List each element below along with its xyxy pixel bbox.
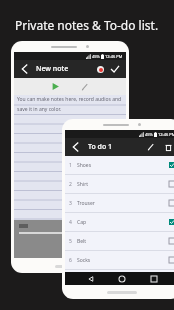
staticText: Private notes & To-do list. — [15, 17, 159, 33]
staticText: 12:46 PM — [158, 132, 174, 137]
button[interactable]: Back — [85, 273, 97, 285]
button[interactable]: 2 — [65, 175, 174, 194]
button[interactable]: Back — [70, 141, 82, 153]
staticText: 1 — [69, 162, 72, 169]
button[interactable]: Edit — [145, 141, 157, 153]
staticText: New note — [36, 64, 69, 74]
button[interactable]: 6 — [65, 251, 174, 270]
staticText: You can make notes here, record audios a… — [17, 96, 122, 103]
button[interactable]: 3 — [65, 194, 174, 213]
button[interactable]: Record audio — [49, 80, 62, 93]
staticText: 5 — [69, 238, 72, 245]
button[interactable]: Back — [19, 63, 31, 75]
staticText: Socks — [77, 257, 91, 264]
button[interactable]: Save — [109, 63, 121, 75]
button[interactable]: 4 — [65, 213, 174, 232]
button[interactable]: 5 — [65, 232, 174, 251]
staticText: Belt — [77, 238, 87, 245]
staticText: 6 — [69, 257, 72, 264]
staticText: save it in any color. — [17, 106, 62, 113]
button[interactable]: 1 — [65, 156, 174, 175]
button[interactable]: Color — [94, 63, 106, 75]
button[interactable]: Delete — [162, 141, 174, 153]
staticText: Shirt — [77, 181, 88, 188]
staticText: 3 — [69, 200, 72, 207]
staticText: To do 1 — [88, 142, 112, 152]
staticText: Trouser — [77, 200, 95, 207]
staticText: 45% — [92, 54, 100, 59]
staticText: Cap — [77, 219, 87, 226]
staticText: 12:46 PM — [105, 54, 123, 59]
staticText: Shoes — [77, 162, 92, 169]
staticText: 2 — [69, 181, 72, 188]
button[interactable]: Pause — [106, 240, 120, 254]
button[interactable]: Draw — [78, 80, 91, 93]
button[interactable]: Volume — [92, 244, 102, 254]
staticText: 4 — [69, 219, 72, 226]
button[interactable]: Recents — [148, 273, 160, 285]
button[interactable]: Home — [116, 273, 128, 285]
staticText: 45% — [145, 132, 153, 137]
